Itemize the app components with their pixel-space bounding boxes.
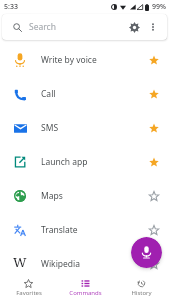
button[interactable]: Commands (57, 277, 113, 300)
button[interactable]: Favorite (144, 118, 164, 138)
staticText: Wikipedia (41, 258, 81, 270)
staticText: Call (41, 88, 56, 100)
staticText: Search (29, 21, 56, 33)
staticText: Translate (41, 224, 78, 236)
button[interactable]: More options (144, 18, 162, 36)
staticText: Maps (41, 190, 63, 202)
staticText: Write by voice (41, 54, 97, 66)
staticText: Favorites (16, 289, 42, 297)
button[interactable]: Favorite (144, 84, 164, 104)
button[interactable]: SMS (0, 111, 169, 145)
staticText: 99% (152, 2, 166, 12)
button[interactable]: Translate (0, 213, 169, 247)
button[interactable]: Start voice command (131, 237, 162, 268)
button[interactable]: Favorite (144, 220, 164, 240)
staticText: Launch app (41, 156, 88, 168)
staticText: History (131, 289, 152, 297)
button[interactable]: Favorites (0, 277, 57, 300)
button[interactable]: History (113, 277, 169, 300)
staticText: W (13, 253, 27, 271)
button[interactable]: Maps (0, 179, 169, 213)
button[interactable]: Favorite (144, 152, 164, 172)
button[interactable]: Favorite (144, 186, 164, 206)
staticText: SMS (41, 122, 59, 134)
button[interactable]: Launch app (0, 145, 169, 179)
staticText: 5:33 (4, 2, 18, 12)
staticText: Commands (69, 289, 102, 297)
button[interactable]: Favorite (144, 254, 164, 274)
button[interactable]: W (0, 247, 169, 281)
button[interactable]: Settings (124, 17, 144, 37)
button[interactable]: Search (8, 18, 26, 36)
button[interactable]: Call (0, 77, 169, 111)
button[interactable]: Write by voice (0, 43, 169, 77)
button[interactable]: Favorite (144, 50, 164, 70)
